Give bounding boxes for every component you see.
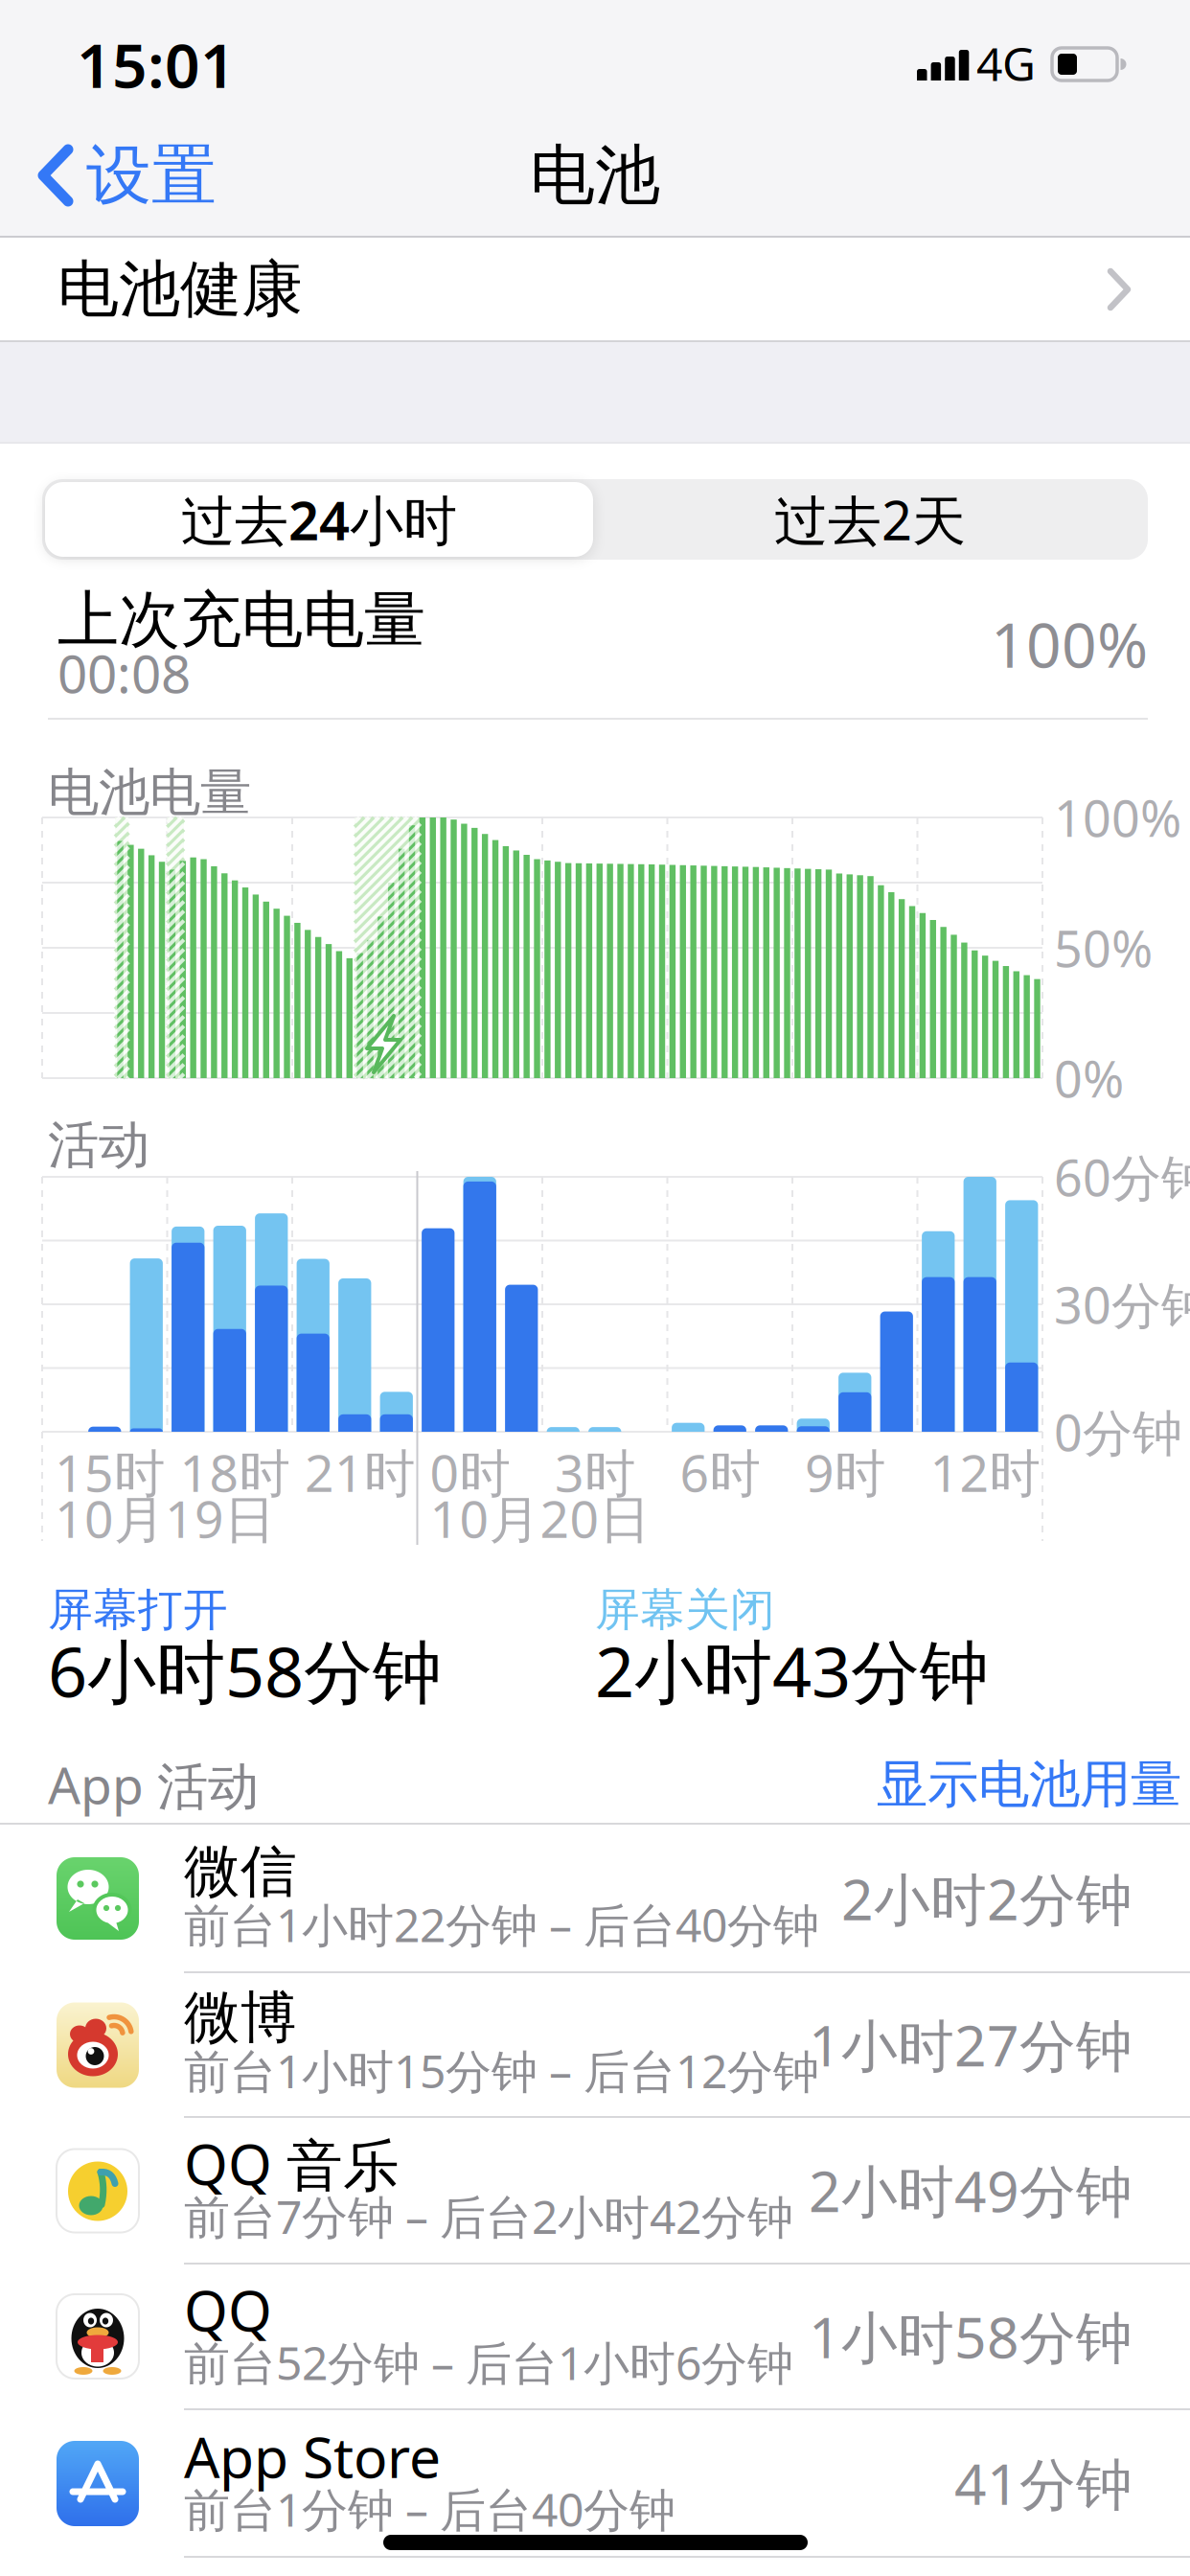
staticText: 微博 <box>184 1983 297 2052</box>
button[interactable]: 设置 <box>37 139 306 212</box>
staticText: 60分钟 <box>1054 1144 1190 1210</box>
staticText: 10月19日 <box>55 1484 275 1552</box>
staticText: 6小时58分钟 <box>48 1625 442 1716</box>
button[interactable]: 过去2天 <box>602 481 1138 558</box>
staticText: 过去24小时 <box>181 484 457 555</box>
staticText: 屏幕关闭 <box>595 1582 775 1637</box>
staticText: 00:08 <box>57 638 191 708</box>
staticText: 1小时58分钟 <box>809 2299 1133 2374</box>
staticText: App 活动 <box>48 1750 259 1819</box>
staticText: 电池健康 <box>57 252 303 327</box>
staticText: 1小时27分钟 <box>809 2007 1133 2082</box>
staticText: 0时 <box>430 1438 510 1506</box>
staticText: App Store <box>184 2419 441 2493</box>
button[interactable]: 显示电池用量 <box>877 1753 1181 1816</box>
staticText: 过去2天 <box>774 484 966 555</box>
staticText: 18时 <box>180 1438 290 1506</box>
button[interactable]: QQ 音乐 <box>0 2117 1190 2264</box>
staticText: 屏幕打开 <box>48 1582 228 1637</box>
staticText: 电池 <box>530 135 660 215</box>
staticText: 活动 <box>48 1114 149 1177</box>
staticText: QQ 音乐 <box>184 2126 400 2201</box>
staticText: 9时 <box>805 1438 885 1506</box>
staticText: 50% <box>1054 915 1153 981</box>
staticText: 30分钟 <box>1054 1271 1190 1337</box>
staticText: 0分钟 <box>1054 1399 1182 1465</box>
staticText: 6时 <box>680 1438 760 1506</box>
button[interactable]: 微博 <box>0 1972 1190 2117</box>
staticText: 10月20日 <box>430 1484 650 1552</box>
button[interactable]: 过去24小时 <box>45 482 593 557</box>
staticText: 前台1分钟 – 后台40分钟 <box>184 2478 675 2539</box>
staticText: 2小时2分钟 <box>841 1861 1133 1936</box>
staticText: 2小时49分钟 <box>809 2153 1133 2228</box>
staticText: 设置 <box>86 135 217 215</box>
button[interactable]: 微信 <box>0 1825 1190 1972</box>
staticText: 41分钟 <box>954 2446 1133 2520</box>
staticText: 上次充电电量 <box>57 582 425 658</box>
staticText: 电池电量 <box>48 761 251 824</box>
staticText: 15:01 <box>77 23 236 105</box>
staticText: QQ <box>184 2272 272 2347</box>
staticText: 12时 <box>930 1438 1040 1506</box>
staticText: 前台1小时22分钟 – 后台40分钟 <box>184 1894 819 1955</box>
staticText: 前台52分钟 – 后台1小时6分钟 <box>184 2332 793 2393</box>
staticText: 0% <box>1054 1045 1124 1111</box>
staticText: 3时 <box>555 1438 635 1506</box>
staticText: 2小时43分钟 <box>595 1625 989 1716</box>
button[interactable]: 电池健康 <box>0 238 1190 341</box>
staticText: 100% <box>991 603 1148 685</box>
staticText: 微信 <box>184 1837 297 1906</box>
staticText: 显示电池用量 <box>877 1753 1181 1816</box>
staticText: 前台1小时15分钟 – 后台12分钟 <box>184 2040 819 2101</box>
button[interactable]: QQ <box>0 2264 1190 2409</box>
staticText: 100% <box>1054 784 1181 851</box>
button[interactable]: App Store <box>0 2409 1190 2557</box>
staticText: 前台7分钟 – 后台2小时42分钟 <box>184 2186 793 2247</box>
staticText: 15时 <box>55 1438 165 1506</box>
staticText: 4G <box>976 33 1036 94</box>
staticText: 21时 <box>305 1438 415 1506</box>
